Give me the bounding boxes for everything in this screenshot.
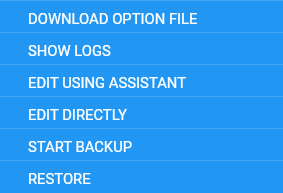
button[interactable]: EDIT USING ASSISTANT [0, 65, 283, 96]
staticText: SHOW LOGS [28, 42, 111, 59]
staticText: EDIT DIRECTLY [28, 106, 127, 123]
button[interactable]: DOWNLOAD OPTION FILE [0, 1, 283, 32]
staticText: DOWNLOAD OPTION FILE [28, 10, 198, 27]
staticText: RESTORE [28, 170, 91, 187]
staticText: START BACKUP [28, 138, 133, 155]
button[interactable]: EDIT DIRECTLY [0, 97, 283, 128]
staticText: EDIT USING ASSISTANT [28, 74, 186, 91]
button[interactable]: RESTORE [0, 161, 283, 192]
button[interactable]: START BACKUP [0, 129, 283, 160]
button[interactable]: SHOW LOGS [0, 33, 283, 64]
